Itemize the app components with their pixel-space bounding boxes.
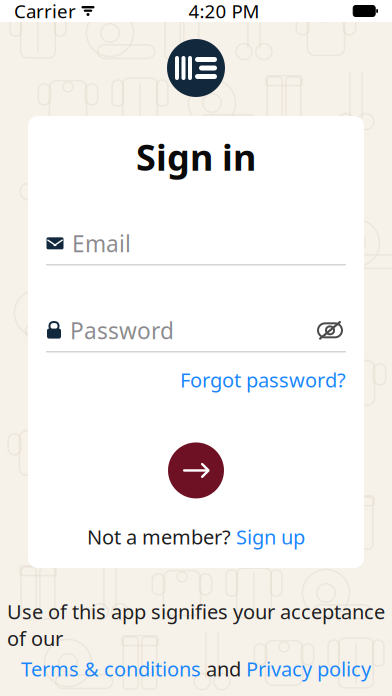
button[interactable]: Sign in — [168, 442, 224, 498]
button[interactable]: Terms & conditions — [21, 655, 201, 682]
button[interactable]: Not a member? — [87, 523, 305, 550]
staticText: Password — [70, 315, 174, 345]
button[interactable]: Privacy policy — [246, 655, 371, 682]
staticText: Sign up — [236, 523, 305, 550]
staticText: Not a member? — [87, 523, 231, 550]
button[interactable]: Show password — [314, 318, 346, 342]
staticText: 4:20 PM — [189, 0, 260, 23]
staticText: and — [206, 655, 241, 682]
staticText: Carrier — [14, 0, 76, 23]
staticText: Terms & conditions — [21, 655, 201, 682]
button[interactable]: Forgot password? — [180, 366, 346, 393]
staticText: Use of this app signifies your acceptanc… — [7, 598, 385, 651]
staticText: Forgot password? — [180, 366, 346, 393]
staticText: Sign in — [136, 133, 256, 181]
staticText: Email — [72, 228, 131, 258]
staticText: Privacy policy — [246, 655, 371, 682]
